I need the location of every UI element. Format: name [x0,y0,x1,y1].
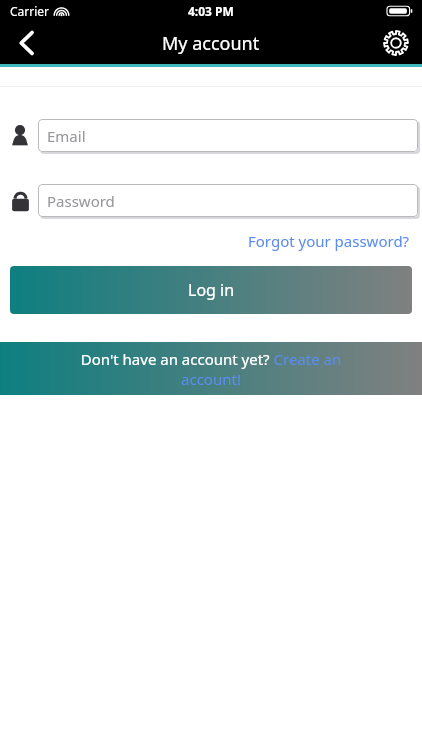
button[interactable]: Don't have an account yet? Create an acc… [0,342,422,395]
staticText: 4:03 PM [188,3,234,19]
staticText: Password [47,191,115,211]
staticText: My account [162,31,260,56]
button[interactable]: Password [38,184,418,217]
button[interactable]: Back [0,22,54,64]
staticText: Carrier [10,3,50,19]
button[interactable]: Email [38,119,418,152]
staticText: Forgot your password? [248,231,410,251]
button[interactable]: Forgot your password? [0,231,422,251]
button[interactable]: Settings [370,22,422,64]
staticText: Log in [188,279,235,301]
staticText: Don't have an account yet? Create an acc… [60,349,362,389]
staticText: Email [47,126,86,146]
button[interactable]: Log in [10,266,412,314]
